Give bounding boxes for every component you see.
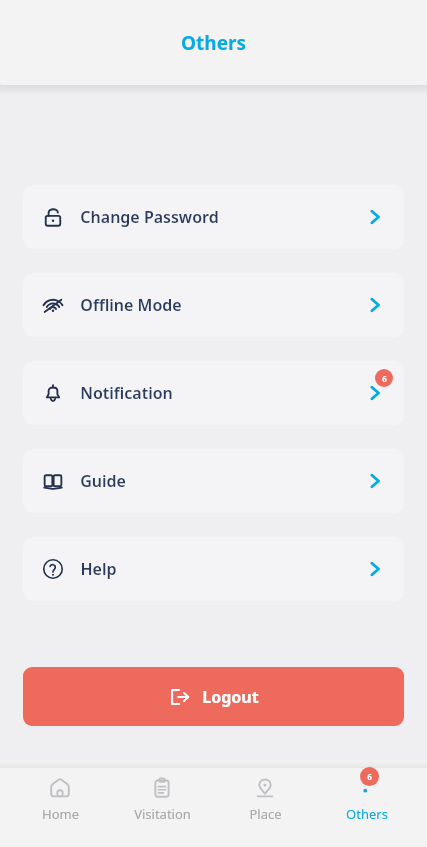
staticText: Notification [80,382,173,404]
button[interactable]: Logout [23,667,404,726]
other: Open [364,558,386,580]
other: Others [356,777,378,799]
other: Open [364,382,386,404]
other: Open [364,470,386,492]
staticText: Guide [80,470,126,492]
button[interactable]: Visitation [119,774,205,823]
staticText: Logout [202,686,259,708]
staticText: Help [80,558,117,580]
button[interactable]: Help [23,537,404,601]
staticText: Offline Mode [80,294,182,316]
staticText: 6 [382,373,387,384]
other: Logout [169,686,191,708]
staticText: Others [346,805,388,823]
other: Place [254,777,276,799]
button[interactable]: Others [324,774,410,823]
other: Open [364,206,386,228]
button[interactable]: Home [17,774,103,823]
other: Visitation [151,777,173,799]
staticText: 6 [367,771,372,782]
staticText: Place [249,805,282,823]
button[interactable]: Change Password [23,185,404,249]
other: Home [49,777,71,799]
staticText: Visitation [134,805,191,823]
staticText: Change Password [80,206,219,228]
button[interactable]: Place [222,774,308,823]
button[interactable]: Notification [23,361,404,425]
button[interactable]: Offline Mode [23,273,404,337]
button[interactable]: Guide [23,449,404,513]
other: Open [364,294,386,316]
staticText: Home [42,805,79,823]
staticText: Others [181,30,246,56]
